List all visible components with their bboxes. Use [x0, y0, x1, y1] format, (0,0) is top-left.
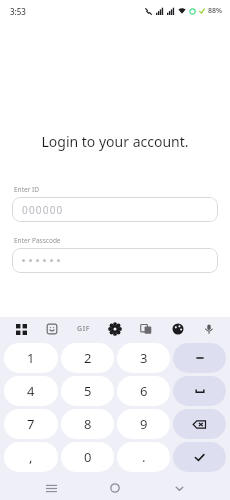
- staticText: 000000: [22, 203, 64, 217]
- staticText: ,: [29, 448, 33, 466]
- staticText: 2: [84, 349, 92, 367]
- button[interactable]: Backspace: [173, 409, 226, 439]
- button[interactable]: Minus: [173, 343, 226, 373]
- button[interactable]: Settings: [104, 318, 126, 340]
- button[interactable]: 9: [117, 409, 170, 439]
- staticText: 3:53: [10, 6, 26, 17]
- button[interactable]: 4: [4, 376, 58, 406]
- staticText: 5: [84, 382, 92, 400]
- button[interactable]: Hide keyboard: [166, 476, 192, 500]
- button[interactable]: 1: [4, 343, 58, 373]
- button[interactable]: Apps: [10, 318, 32, 340]
- button[interactable]: 000000: [12, 197, 218, 222]
- button[interactable]: ,: [4, 442, 58, 472]
- staticText: .: [142, 448, 146, 466]
- button[interactable]: Space: [173, 376, 226, 406]
- button[interactable]: 6: [117, 376, 170, 406]
- button[interactable]: 2: [61, 343, 114, 373]
- staticText: 7: [27, 415, 35, 433]
- staticText: 0: [84, 448, 92, 466]
- staticText: GIF: [77, 324, 91, 334]
- button[interactable]: Done: [173, 442, 226, 472]
- staticText: 8: [84, 415, 92, 433]
- button[interactable]: 0: [61, 442, 114, 472]
- button[interactable]: Recent apps: [38, 476, 64, 500]
- staticText: Login to your account.: [41, 132, 189, 151]
- staticText: 9: [140, 415, 148, 433]
- button[interactable]: GIF: [73, 318, 95, 340]
- staticText: Enter ID: [14, 185, 39, 194]
- staticText: 4: [27, 382, 35, 400]
- button[interactable]: .: [117, 442, 170, 472]
- staticText: 88%: [208, 6, 222, 16]
- button[interactable]: [12, 248, 218, 273]
- button[interactable]: Themes: [167, 318, 189, 340]
- button[interactable]: Translate: [135, 318, 157, 340]
- button[interactable]: 5: [61, 376, 114, 406]
- staticText: 1: [27, 349, 35, 367]
- button[interactable]: Voice input: [198, 318, 220, 340]
- staticText: 3: [140, 349, 148, 367]
- staticText: Enter Passcode: [14, 236, 61, 245]
- button[interactable]: Home: [102, 476, 128, 500]
- button[interactable]: 3: [117, 343, 170, 373]
- staticText: 6: [140, 382, 148, 400]
- button[interactable]: Stickers: [41, 318, 63, 340]
- button[interactable]: 7: [4, 409, 58, 439]
- button[interactable]: 8: [61, 409, 114, 439]
